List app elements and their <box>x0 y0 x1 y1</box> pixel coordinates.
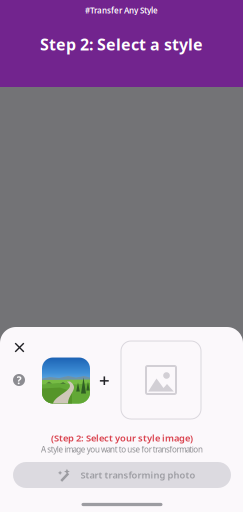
button[interactable]: Select style image <box>121 341 201 419</box>
staticText: (Step 2: Select your style image) <box>51 432 193 444</box>
staticText: #Transfer Any Style <box>85 5 158 16</box>
staticText: + <box>99 368 110 392</box>
staticText: Start transforming photo <box>80 469 195 481</box>
button[interactable]: Close <box>8 336 30 358</box>
button[interactable]: Help <box>7 368 31 392</box>
staticText: A style image you want to use for transf… <box>41 444 203 455</box>
button[interactable]: Start transforming photo <box>13 462 231 488</box>
staticText: Step 2: Select a style <box>40 34 203 55</box>
staticText: ? <box>16 373 21 387</box>
